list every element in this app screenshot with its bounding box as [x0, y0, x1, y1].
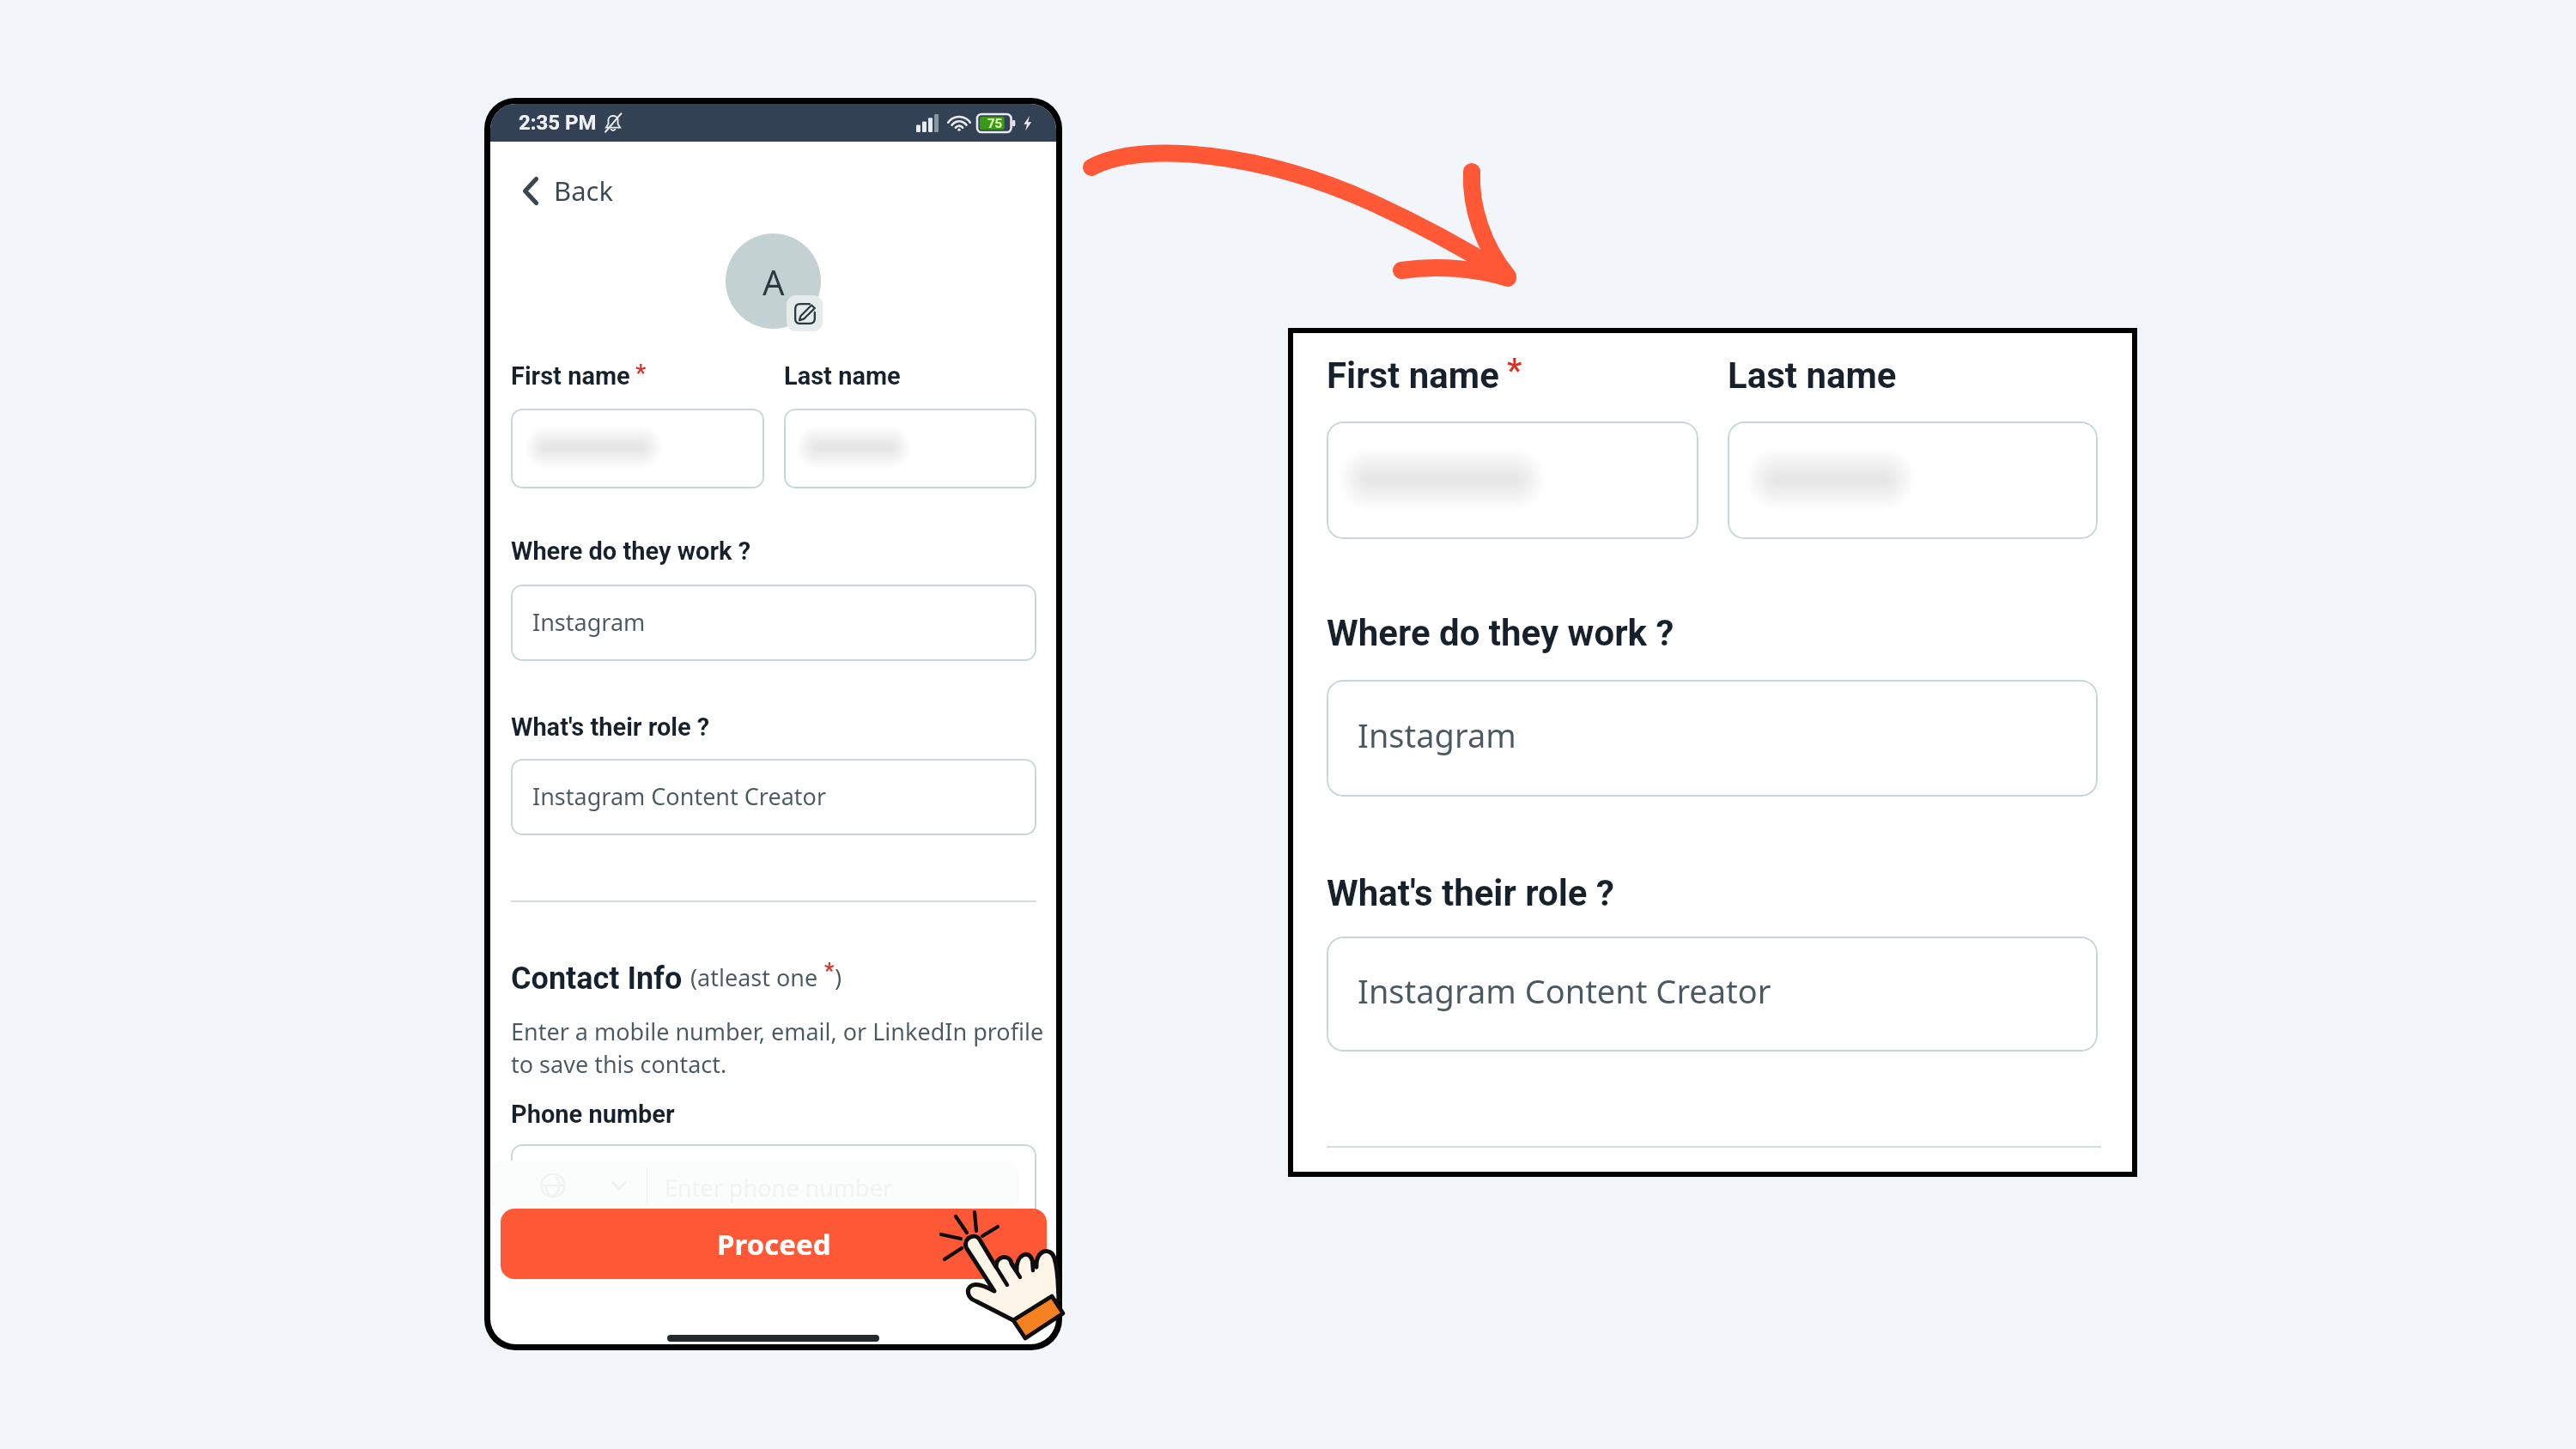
staticText: *	[1507, 352, 1522, 391]
staticText: Phone number	[511, 1100, 675, 1129]
staticText: What's their role ?	[511, 712, 710, 742]
staticText: *	[824, 959, 835, 984]
staticText: Enter a mobile number, email, or LinkedI…	[511, 1016, 1044, 1047]
button[interactable]: Back	[516, 166, 620, 215]
staticText: Enter phone number	[665, 1172, 893, 1203]
button[interactable]: Proceed	[501, 1209, 1047, 1279]
staticText: Instagram	[1358, 712, 1516, 757]
button[interactable]: Phone number input	[511, 1144, 1036, 1221]
staticText: Where do they work ?	[511, 537, 751, 566]
staticText: *	[635, 360, 647, 387]
button[interactable]: Edit profile photo	[787, 295, 823, 331]
staticText: Where do they work ?	[1327, 612, 1674, 654]
button[interactable]: Instagram	[1327, 680, 2098, 797]
staticText: to save this contact.	[511, 1048, 727, 1080]
button[interactable]: First name input	[1327, 421, 1698, 539]
staticText: Instagram	[532, 606, 646, 638]
button[interactable]: Last name input	[1728, 421, 2098, 539]
staticText: Back	[554, 173, 613, 209]
staticText: Instagram Content Creator	[532, 780, 827, 812]
staticText: What's their role ?	[1327, 872, 1614, 914]
button[interactable]: First name input	[511, 409, 764, 488]
staticText: Instagram Content Creator	[1358, 968, 1771, 1013]
staticText: First name	[1327, 355, 1499, 397]
staticText: (atleast one	[690, 961, 824, 993]
staticText: 2:35 PM	[519, 111, 597, 135]
staticText: Last name	[784, 361, 901, 391]
staticText: 75	[987, 116, 1003, 131]
button[interactable]: Instagram	[511, 585, 1036, 661]
button[interactable]: Instagram Content Creator	[1327, 937, 2098, 1052]
staticText: A	[762, 258, 785, 305]
staticText: )	[835, 961, 842, 993]
button[interactable]: Last name input	[784, 409, 1036, 488]
staticText: Contact Info	[511, 961, 683, 997]
button[interactable]: Instagram Content Creator	[511, 759, 1036, 835]
staticText: Proceed	[717, 1225, 831, 1264]
staticText: First name	[511, 361, 630, 391]
staticText: Last name	[1728, 355, 1897, 397]
